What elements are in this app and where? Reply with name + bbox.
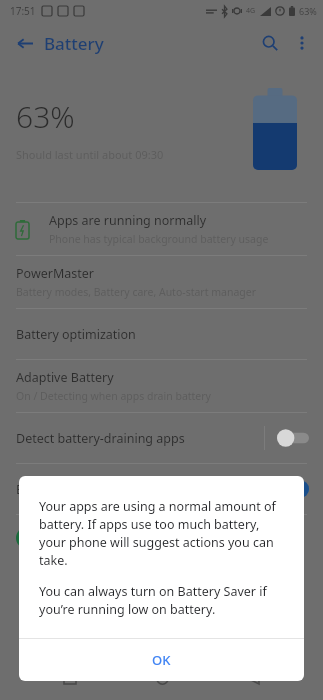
staticText: OK [152, 651, 171, 669]
staticText: Detect battery-draining apps [16, 430, 264, 447]
staticText: 63% [16, 96, 75, 137]
staticText: 63% [299, 5, 317, 17]
staticText: You can always turn on Battery Saver if … [39, 583, 284, 618]
button[interactable]: Back [8, 27, 40, 59]
button[interactable]: OK [19, 639, 304, 681]
staticText: On / Detecting when apps drain battery [16, 389, 211, 403]
staticText: Battery [44, 32, 104, 55]
staticText: Battery optimization [16, 326, 136, 343]
staticText: Battery percentage [16, 481, 264, 498]
button[interactable]: Home [140, 656, 184, 700]
button[interactable]: Search [253, 26, 287, 60]
staticText: Apps are running normally [49, 212, 207, 229]
staticText: Battery modes, Battery care, Auto-start … [16, 285, 257, 299]
staticText: Should last until about 09:30 [16, 147, 164, 162]
button[interactable]: Battery percentage [0, 464, 323, 514]
button[interactable]: More options [287, 28, 317, 58]
staticText: 17:51 [10, 4, 36, 18]
button[interactable]: Adaptive Battery [0, 360, 323, 412]
staticText: Spotify [56, 530, 95, 546]
staticText: Adaptive Battery [16, 369, 114, 386]
staticText: 4G [246, 6, 256, 16]
button[interactable]: Back [231, 656, 275, 700]
button[interactable]: Spotify [0, 515, 323, 561]
staticText: Phone has typical background battery usa… [49, 232, 269, 246]
staticText: PowerMaster [16, 265, 94, 282]
staticText: Your apps are using a normal amount of b… [39, 498, 284, 569]
button[interactable]: Battery optimization [0, 309, 323, 359]
button[interactable]: Recent apps [48, 656, 92, 700]
button[interactable]: PowerMaster [0, 256, 323, 308]
button[interactable]: Apps are running normally [0, 203, 323, 255]
button[interactable]: Detect battery-draining apps [0, 413, 323, 463]
